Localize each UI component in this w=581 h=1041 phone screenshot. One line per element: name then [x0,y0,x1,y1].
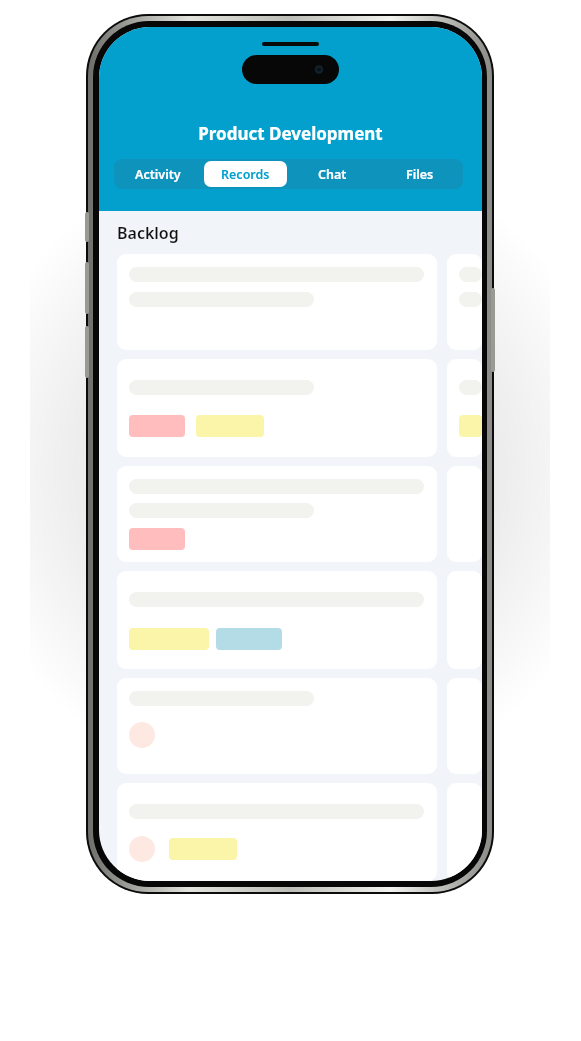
button[interactable] [117,783,437,881]
staticText: Chat [318,166,347,183]
button[interactable]: Files [378,161,461,187]
button[interactable] [447,359,482,457]
button[interactable]: Activity [116,161,200,187]
staticText: Files [406,166,434,183]
button[interactable]: Chat [291,161,374,187]
button[interactable] [117,254,437,350]
staticText: Product Development [99,122,482,145]
staticText: Activity [135,166,181,183]
button[interactable] [117,571,437,669]
staticText: Backlog [117,222,179,244]
button[interactable] [117,359,437,457]
button[interactable] [447,783,482,881]
other: Dynamic Island [242,55,339,84]
button[interactable]: Records [204,161,287,187]
button[interactable] [117,466,437,562]
button[interactable] [117,678,437,774]
staticText: Records [221,166,270,183]
button[interactable] [447,254,482,350]
